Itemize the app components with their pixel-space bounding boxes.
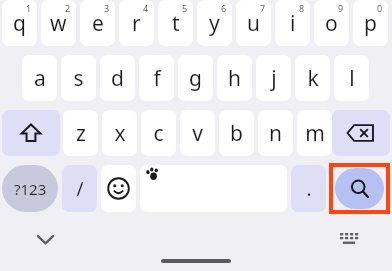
button[interactable]: r	[119, 0, 154, 46]
button[interactable]: Search	[335, 168, 384, 209]
staticText: t	[172, 9, 180, 38]
staticText: s	[73, 64, 84, 93]
staticText: k	[307, 64, 319, 93]
button[interactable]: m	[297, 110, 332, 156]
staticText: 8	[299, 2, 305, 14]
button[interactable]: h	[217, 55, 252, 101]
button[interactable]: Backspace	[332, 110, 390, 156]
staticText: q	[13, 9, 26, 38]
staticText: p	[364, 9, 377, 38]
button[interactable]: e	[80, 0, 115, 46]
staticText: .	[306, 176, 312, 202]
staticText: 4	[143, 2, 149, 14]
staticText: 3	[104, 2, 110, 14]
staticText: 0	[377, 2, 383, 14]
button[interactable]: q	[2, 0, 37, 46]
button[interactable]: Switch keyboard	[330, 225, 370, 253]
button[interactable]: .	[291, 165, 326, 212]
staticText: h	[228, 64, 241, 93]
staticText: j	[271, 64, 277, 93]
button[interactable]: y	[197, 0, 232, 46]
staticText: 5	[182, 2, 188, 14]
staticText: z	[76, 119, 86, 148]
staticText: o	[325, 9, 338, 38]
staticText: 2	[65, 2, 71, 14]
button[interactable]: u	[236, 0, 271, 46]
staticText: l	[349, 64, 355, 93]
button[interactable]: w	[41, 0, 76, 46]
staticText: 9	[338, 2, 344, 14]
button[interactable]: o	[314, 0, 349, 46]
staticText: /	[76, 176, 84, 202]
staticText: w	[50, 9, 67, 38]
button[interactable]: j	[256, 55, 291, 101]
button[interactable]: f	[139, 55, 174, 101]
button[interactable]: n	[258, 110, 293, 156]
button[interactable]: v	[180, 110, 215, 156]
button[interactable]: k	[295, 55, 330, 101]
staticText: x	[114, 119, 126, 148]
button[interactable]: a	[22, 55, 57, 101]
button[interactable]: b	[219, 110, 254, 156]
staticText: u	[247, 9, 260, 38]
staticText: r	[132, 9, 141, 38]
staticText: ?123	[14, 179, 47, 199]
button[interactable]: i	[275, 0, 310, 46]
button[interactable]: z	[63, 110, 98, 156]
staticText: i	[290, 9, 296, 38]
staticText: v	[192, 119, 203, 148]
staticText: f	[153, 64, 161, 93]
button[interactable]: ?123	[2, 165, 58, 212]
button[interactable]: Hide keyboard	[28, 225, 62, 253]
button[interactable]: c	[141, 110, 176, 156]
staticText: 7	[260, 2, 266, 14]
staticText: b	[230, 119, 243, 148]
button[interactable]: t	[158, 0, 193, 46]
staticText: e	[92, 9, 104, 38]
staticText: d	[111, 64, 124, 93]
staticText: g	[189, 64, 202, 93]
button[interactable]: /	[62, 165, 97, 212]
staticText: c	[153, 119, 164, 148]
button[interactable]: Emoji	[101, 165, 136, 212]
button[interactable]: x	[102, 110, 137, 156]
button[interactable]: s	[61, 55, 96, 101]
staticText: m	[305, 119, 325, 148]
staticText: n	[269, 119, 282, 148]
button[interactable]: l	[334, 55, 369, 101]
button[interactable]: g	[178, 55, 213, 101]
button[interactable]: d	[100, 55, 135, 101]
button[interactable]: Shift	[2, 110, 60, 156]
staticText: 1	[26, 2, 32, 14]
button[interactable]: p	[353, 0, 388, 46]
staticText: y	[209, 9, 220, 38]
button[interactable]: Space	[140, 165, 287, 212]
staticText: 6	[221, 2, 227, 14]
staticText: a	[34, 64, 46, 93]
